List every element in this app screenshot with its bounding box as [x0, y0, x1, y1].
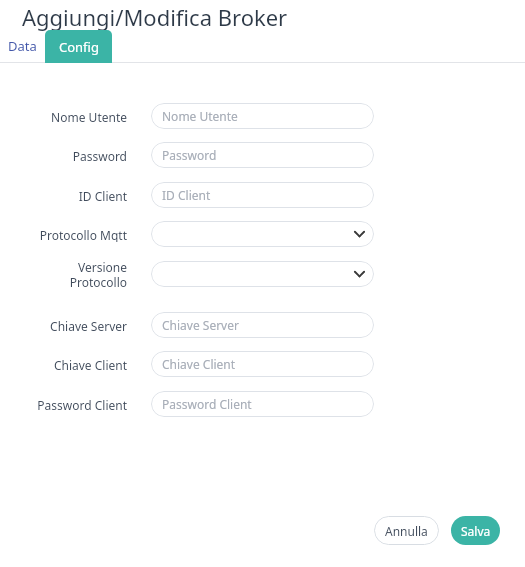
staticText: Password	[72, 148, 127, 163]
button[interactable]: Data	[0, 30, 45, 62]
staticText: Chiave Server	[50, 318, 127, 333]
staticText: Annulla	[385, 523, 428, 539]
staticText: Protocollo	[69, 274, 127, 289]
staticText: Nome Utente	[51, 109, 127, 124]
button[interactable]: Config	[45, 30, 112, 63]
button[interactable]: Chiave Server	[151, 312, 374, 338]
button[interactable]: Nome Utente	[151, 103, 374, 129]
button[interactable]: Salva	[451, 516, 500, 545]
button[interactable]: Chiave Client	[151, 351, 374, 377]
button[interactable]: ID Client	[151, 182, 374, 208]
staticText: Password Client	[37, 397, 127, 412]
staticText: Salva	[461, 523, 491, 539]
staticText: ID Client	[78, 188, 127, 203]
staticText: Password	[162, 147, 217, 163]
staticText: Chiave Client	[162, 356, 236, 372]
staticText: Versione	[78, 259, 127, 274]
staticText: Chiave Server	[162, 317, 239, 333]
staticText: Protocollo Mqtt	[39, 227, 127, 242]
button[interactable]: Protocollo Mqtt	[151, 221, 374, 247]
staticText: ID Client	[162, 187, 211, 203]
staticText: Data	[8, 37, 37, 55]
button[interactable]: Versione Protocollo	[151, 261, 374, 287]
staticText: Chiave Client	[53, 357, 127, 372]
staticText: Password Client	[162, 396, 252, 412]
staticText: Config	[59, 38, 99, 56]
button[interactable]: Password	[151, 142, 374, 168]
button[interactable]: Password Client	[151, 391, 374, 417]
staticText: Nome Utente	[162, 108, 238, 124]
staticText: Aggiungi/Modifica Broker	[22, 2, 288, 32]
button[interactable]: Annulla	[374, 516, 439, 545]
